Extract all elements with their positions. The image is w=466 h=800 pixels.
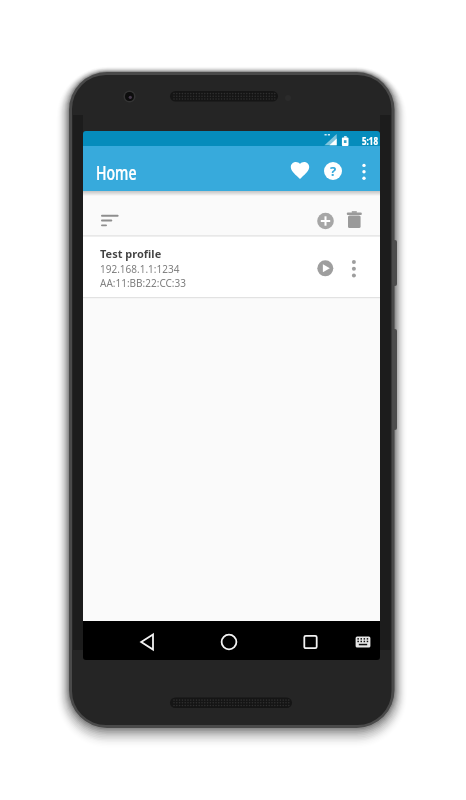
- staticText: Home: [96, 159, 137, 187]
- staticText: 192.168.1.1:1234: [100, 262, 180, 276]
- staticText: 5:18: [362, 134, 378, 148]
- staticText: AA:11:BB:22:CC:33: [100, 276, 186, 290]
- staticText: Test profile: [100, 246, 162, 261]
- staticText: ?: [330, 162, 337, 180]
